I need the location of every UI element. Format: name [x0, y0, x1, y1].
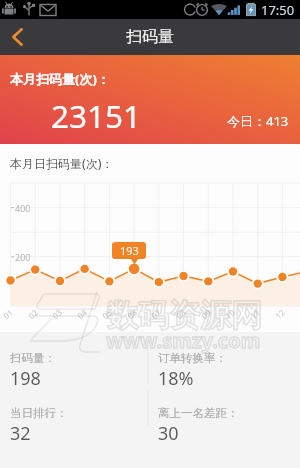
- staticText: 04: [75, 306, 89, 321]
- staticText: 03: [50, 306, 64, 321]
- staticText: 06: [125, 306, 139, 321]
- button[interactable]: 当日排行：: [2, 399, 142, 447]
- staticText: 本月扫码量(次)：: [10, 70, 110, 88]
- staticText: 05: [100, 306, 114, 321]
- staticText: 10: [223, 306, 237, 321]
- staticText: 17:50: [261, 1, 295, 19]
- staticText: 扫码量：: [10, 351, 56, 365]
- button[interactable]: 离上一名差距：: [150, 399, 290, 447]
- button[interactable]: 扫码量：: [2, 344, 142, 392]
- staticText: 本月日扫码量(次)：: [10, 155, 114, 171]
- staticText: 198: [10, 366, 41, 391]
- staticText: 11: [248, 306, 262, 321]
- button[interactable]: Back: [0, 19, 34, 55]
- staticText: 02: [26, 306, 40, 321]
- staticText: 今日：413: [227, 112, 289, 130]
- staticText: 当日排行：: [10, 406, 68, 420]
- button[interactable]: 订单转换率：: [150, 344, 290, 392]
- staticText: 07: [149, 306, 163, 321]
- staticText: 400: [15, 202, 31, 214]
- staticText: 08: [174, 306, 188, 321]
- staticText: 32: [10, 421, 31, 446]
- staticText: 23151: [51, 94, 142, 137]
- staticText: 01: [1, 306, 15, 321]
- staticText: 09: [199, 306, 213, 321]
- staticText: 200: [15, 251, 31, 263]
- staticText: 12: [273, 306, 287, 321]
- staticText: 数码资源网: [107, 296, 262, 335]
- staticText: 离上一名差距：: [158, 406, 239, 420]
- staticText: 18%: [158, 366, 194, 391]
- staticText: www.smzy.com: [106, 327, 261, 354]
- staticText: 扫码量: [126, 27, 174, 47]
- staticText: 订单转换率：: [158, 351, 227, 365]
- staticText: 193: [120, 243, 139, 258]
- staticText: 30: [158, 421, 179, 446]
